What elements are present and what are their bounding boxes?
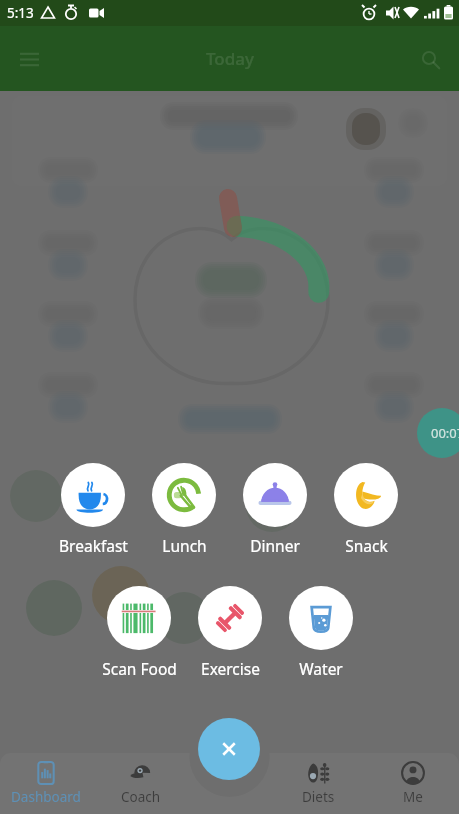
staticText: Exercise — [201, 658, 260, 679]
button[interactable]: Me — [367, 753, 459, 814]
button[interactable]: Lunch — [139, 463, 229, 556]
button[interactable]: Open navigation menu — [6, 36, 52, 82]
button[interactable]: Water — [276, 586, 366, 679]
button[interactable]: Dinner — [230, 463, 320, 556]
staticText: Scan Food — [102, 658, 177, 679]
staticText: Coach — [121, 788, 161, 806]
staticText: Today — [206, 47, 254, 70]
button[interactable]: Exercise — [185, 586, 275, 679]
staticText: Breakfast — [59, 535, 128, 556]
staticText: 00:07 — [431, 424, 459, 442]
staticText: Dinner — [250, 535, 300, 556]
button[interactable]: Scan Food — [94, 586, 184, 679]
button[interactable]: Close menu — [198, 718, 260, 780]
staticText: Snack — [345, 535, 388, 556]
staticText: Me — [403, 788, 423, 806]
staticText: Diets — [302, 788, 335, 806]
button[interactable]: Breakfast — [48, 463, 138, 556]
button[interactable]: 00:07 — [417, 408, 459, 458]
button[interactable]: Dashboard — [0, 753, 92, 814]
button[interactable]: Snack — [321, 463, 411, 556]
staticText: Lunch — [162, 535, 207, 556]
button[interactable]: Search — [407, 36, 453, 82]
button[interactable]: Diets — [272, 753, 364, 814]
staticText: 5:13 — [7, 4, 34, 22]
staticText: Dashboard — [11, 788, 81, 806]
staticText: Water — [299, 658, 343, 679]
button[interactable]: Coach — [95, 753, 187, 814]
